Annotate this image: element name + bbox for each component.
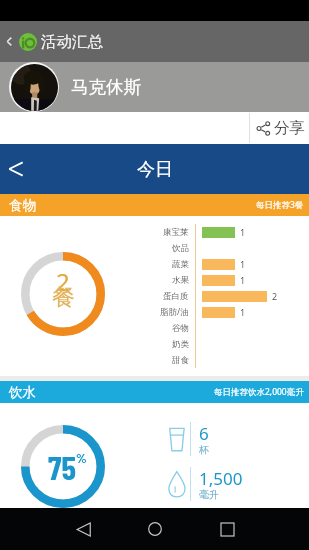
staticText: 脂肪/油 — [160, 306, 189, 318]
button[interactable]: 食物 — [0, 194, 309, 216]
staticText: 饮品 — [172, 243, 189, 254]
staticText: 活动汇总 — [41, 32, 103, 52]
staticText: 1 — [240, 258, 246, 270]
button[interactable]: 马克休斯 — [0, 62, 309, 112]
button[interactable]: Back — [64, 510, 102, 548]
staticText: 今日 — [137, 158, 173, 181]
staticText: 康宝莱 — [163, 227, 189, 238]
staticText: 毫升 — [199, 488, 219, 501]
staticText: 1,500 — [199, 467, 243, 490]
staticText: 每日推荐3餐 — [256, 199, 304, 211]
button[interactable]: Back — [2, 34, 17, 49]
staticText: 甜食 — [172, 355, 189, 366]
button[interactable]: 今日 — [0, 144, 309, 194]
staticText: 饮水 — [9, 384, 36, 401]
staticText: 奶类 — [172, 339, 189, 350]
staticText: 1 — [240, 226, 246, 238]
staticText: 1 — [240, 306, 246, 318]
staticText: 2 — [272, 290, 278, 302]
button[interactable]: 饮水 — [0, 381, 309, 403]
staticText: 水果 — [172, 275, 189, 286]
staticText: 谷物 — [172, 323, 189, 334]
staticText: 每日推荐饮水2,000毫升 — [214, 386, 304, 398]
staticText: 杯 — [199, 443, 209, 456]
staticText: 食物 — [9, 197, 36, 214]
button[interactable]: Back — [0, 21, 309, 62]
button[interactable]: Previous day — [9, 162, 23, 176]
staticText: 分享 — [274, 118, 305, 138]
staticText: 马克休斯 — [71, 76, 141, 98]
button[interactable]: Home — [136, 510, 174, 548]
staticText: 2 — [56, 265, 70, 298]
staticText: % — [76, 449, 87, 466]
staticText: 蔬菜 — [172, 259, 189, 270]
button[interactable]: 分享 — [250, 112, 309, 144]
button[interactable]: Recents — [208, 510, 246, 548]
staticText: 75 — [48, 447, 76, 487]
staticText: 餐 — [52, 283, 75, 312]
staticText: 1 — [240, 274, 246, 286]
staticText: 蛋白质 — [163, 291, 189, 302]
staticText: 6 — [199, 422, 209, 445]
